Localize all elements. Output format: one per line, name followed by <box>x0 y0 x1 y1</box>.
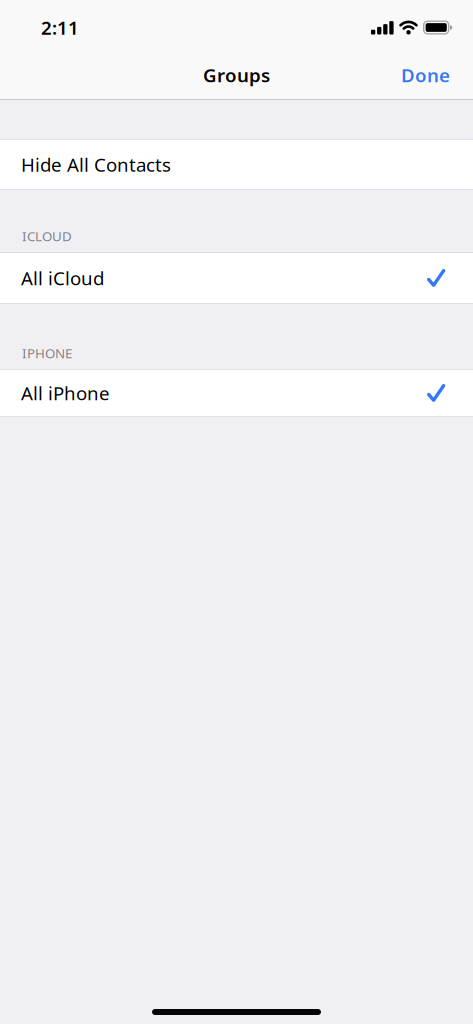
staticText: ICLOUD <box>22 227 72 245</box>
staticText: All iCloud <box>21 266 104 290</box>
button[interactable]: All iPhone <box>0 369 473 417</box>
staticText: IPHONE <box>22 344 72 362</box>
staticText: All iPhone <box>21 381 110 405</box>
staticText: Done <box>401 63 450 87</box>
button[interactable]: Hide All Contacts <box>0 139 473 190</box>
staticText: Hide All Contacts <box>21 152 171 177</box>
button[interactable]: All iCloud <box>0 252 473 304</box>
button[interactable]: Done <box>401 63 473 87</box>
staticText: Groups <box>203 63 270 87</box>
staticText: 2:11 <box>41 15 79 40</box>
